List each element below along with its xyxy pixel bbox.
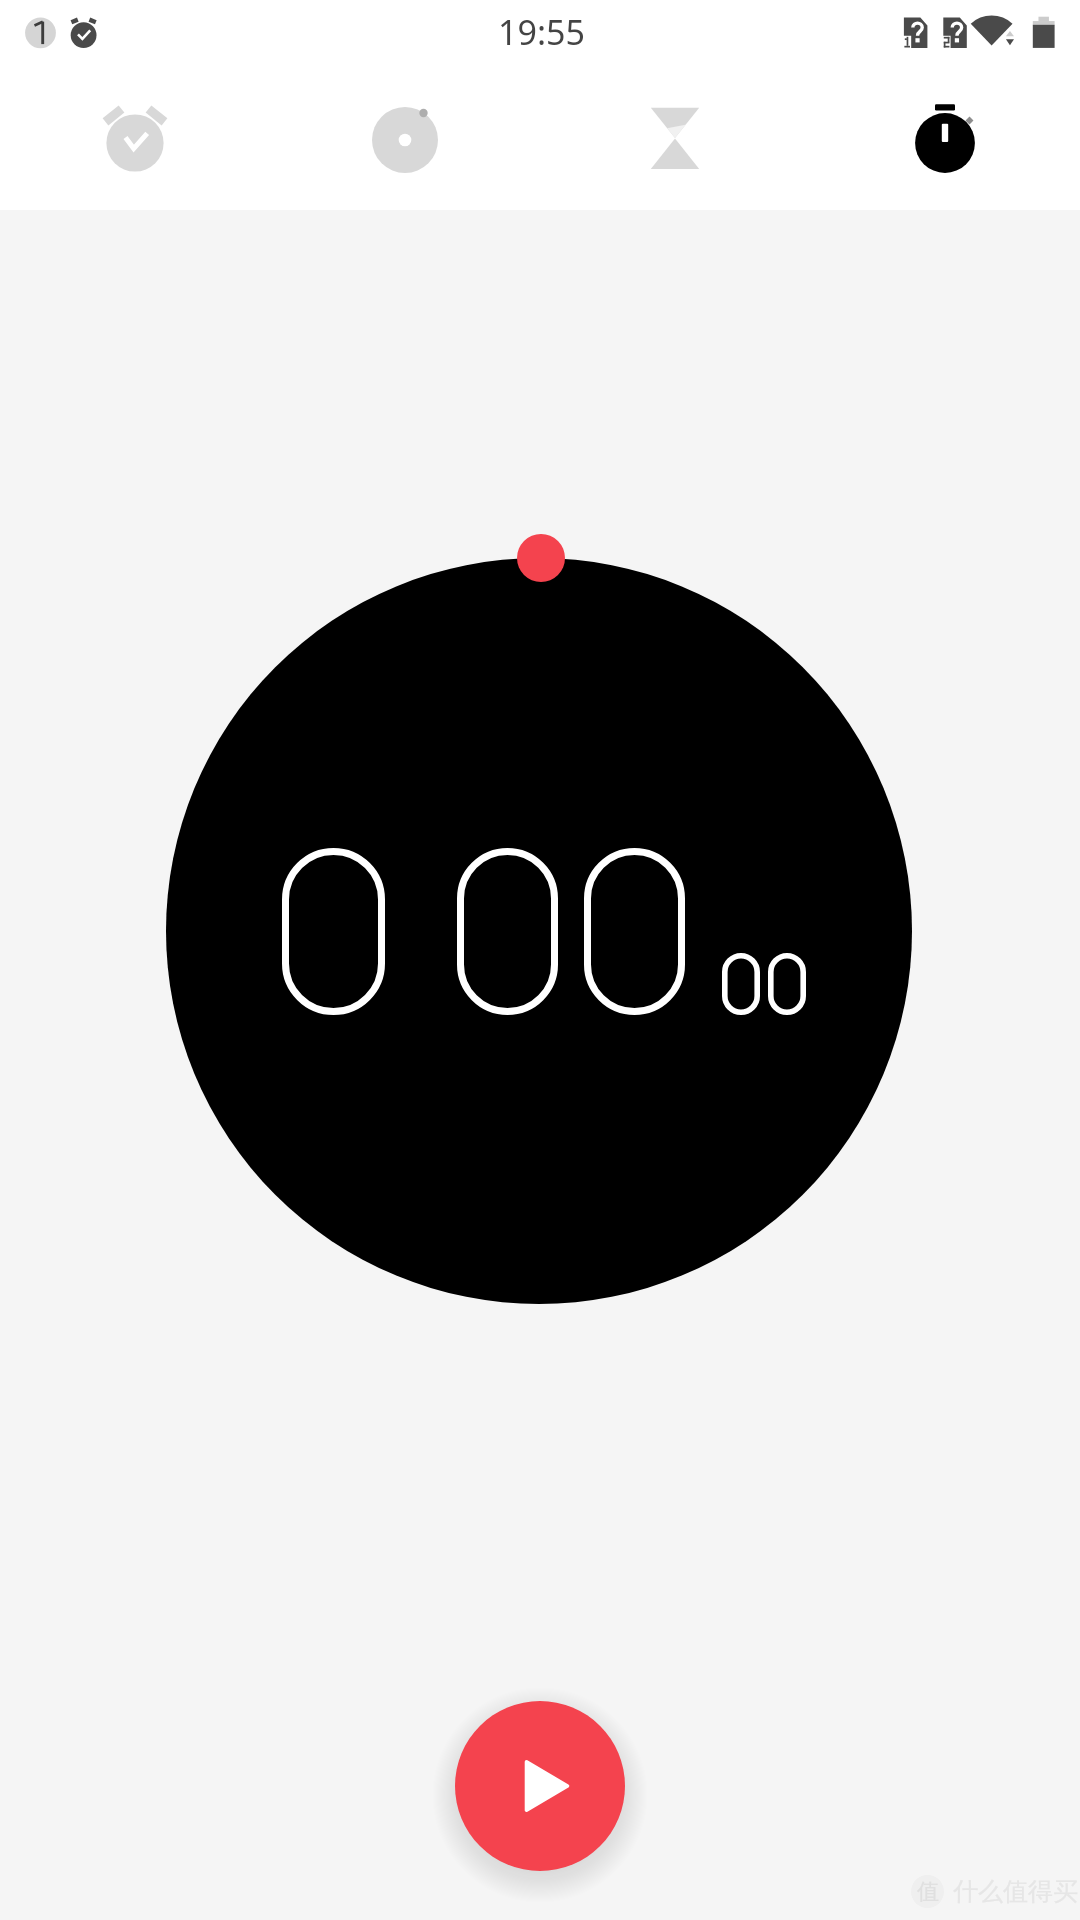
button[interactable]: Timer bbox=[540, 68, 810, 210]
button[interactable]: Alarm bbox=[0, 68, 270, 210]
button[interactable]: Stopwatch bbox=[810, 68, 1080, 210]
staticText: 19:55 bbox=[498, 9, 585, 55]
staticText: 值 bbox=[917, 1878, 939, 1906]
staticText: 什么值得买 bbox=[953, 1876, 1078, 1907]
button[interactable]: Clock bbox=[270, 68, 540, 210]
button[interactable]: Start bbox=[455, 1701, 625, 1871]
